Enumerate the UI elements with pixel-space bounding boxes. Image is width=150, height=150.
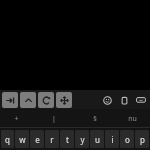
button[interactable]: Shift bbox=[20, 92, 36, 108]
button[interactable]: Move cursor bbox=[56, 92, 72, 108]
button[interactable]: + bbox=[0, 109, 33, 128]
button[interactable]: o bbox=[120, 130, 134, 148]
staticText: t bbox=[66, 134, 69, 145]
button[interactable]: nu bbox=[114, 109, 150, 128]
staticText: w bbox=[19, 134, 26, 145]
staticText: e bbox=[35, 134, 40, 145]
button[interactable]: u bbox=[90, 130, 104, 148]
button[interactable]: Undo bbox=[38, 92, 54, 108]
button[interactable]: i bbox=[105, 130, 119, 148]
button[interactable]: Keyboard settings bbox=[135, 94, 147, 106]
button[interactable]: e bbox=[30, 130, 44, 148]
staticText: i bbox=[111, 134, 114, 145]
staticText: r bbox=[50, 134, 54, 145]
button[interactable]: Clipboard bbox=[118, 94, 130, 106]
button[interactable]: r bbox=[45, 130, 59, 148]
button[interactable]: t bbox=[60, 130, 74, 148]
staticText: u bbox=[95, 134, 100, 145]
staticText: § bbox=[93, 114, 97, 124]
staticText: o bbox=[125, 134, 130, 145]
staticText: q bbox=[5, 134, 10, 145]
button[interactable]: q bbox=[1, 130, 14, 148]
button[interactable]: § bbox=[75, 109, 114, 128]
button[interactable]: Tab bbox=[2, 92, 18, 108]
button[interactable]: y bbox=[75, 130, 89, 148]
button[interactable]: | bbox=[33, 109, 75, 128]
staticText: | bbox=[52, 114, 56, 124]
button[interactable]: Emoji bbox=[101, 94, 113, 106]
button[interactable]: w bbox=[15, 130, 29, 148]
staticText: + bbox=[14, 114, 19, 124]
staticText: p bbox=[140, 134, 145, 145]
staticText: y bbox=[80, 134, 85, 145]
staticText: nu bbox=[128, 114, 137, 124]
button[interactable]: p bbox=[135, 130, 149, 148]
